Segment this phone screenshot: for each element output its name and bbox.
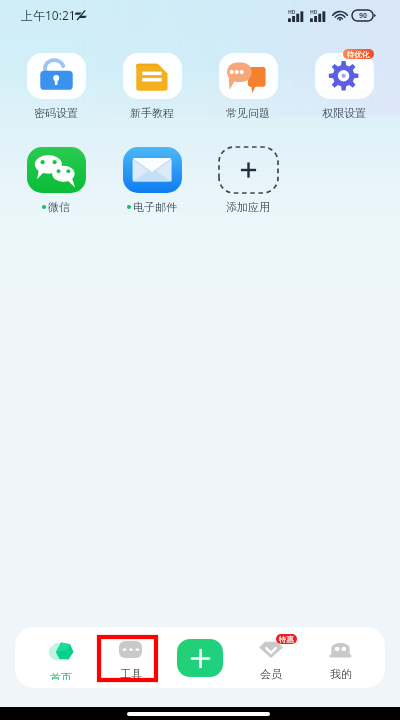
button[interactable]: 工具 [102,636,159,680]
staticText: 工具 [120,667,142,680]
staticText: 常见问题 [226,106,270,120]
staticText: 首页 [50,671,72,680]
button[interactable]: 待优化 [296,53,392,120]
staticText: 密码设置 [34,106,78,120]
button[interactable]: 添加应用 [200,147,296,214]
staticText: 特惠 [279,635,294,644]
staticText: HD [288,9,296,16]
staticText: 新手教程 [130,106,174,120]
staticText: 权限设置 [322,106,366,120]
staticText: 90 [359,11,368,21]
button[interactable]: 新手教程 [104,53,200,120]
button[interactable]: Add [177,639,223,677]
staticText: 会员 [260,667,282,680]
button[interactable]: 电子邮件 [104,147,200,214]
button[interactable]: 常见问题 [200,53,296,120]
button[interactable]: 特惠 [242,636,299,680]
staticText: 上午10:21 [21,7,76,23]
button[interactable]: 我的 [312,636,369,680]
staticText: HD [310,9,318,16]
button[interactable]: 微信 [8,147,104,214]
staticText: 我的 [330,667,352,680]
staticText: 电子邮件 [133,200,177,214]
button[interactable]: 首页 [32,636,89,680]
staticText: 待优化 [347,50,370,59]
staticText: 添加应用 [226,200,270,214]
button[interactable]: 密码设置 [8,53,104,120]
staticText: 微信 [48,200,70,214]
